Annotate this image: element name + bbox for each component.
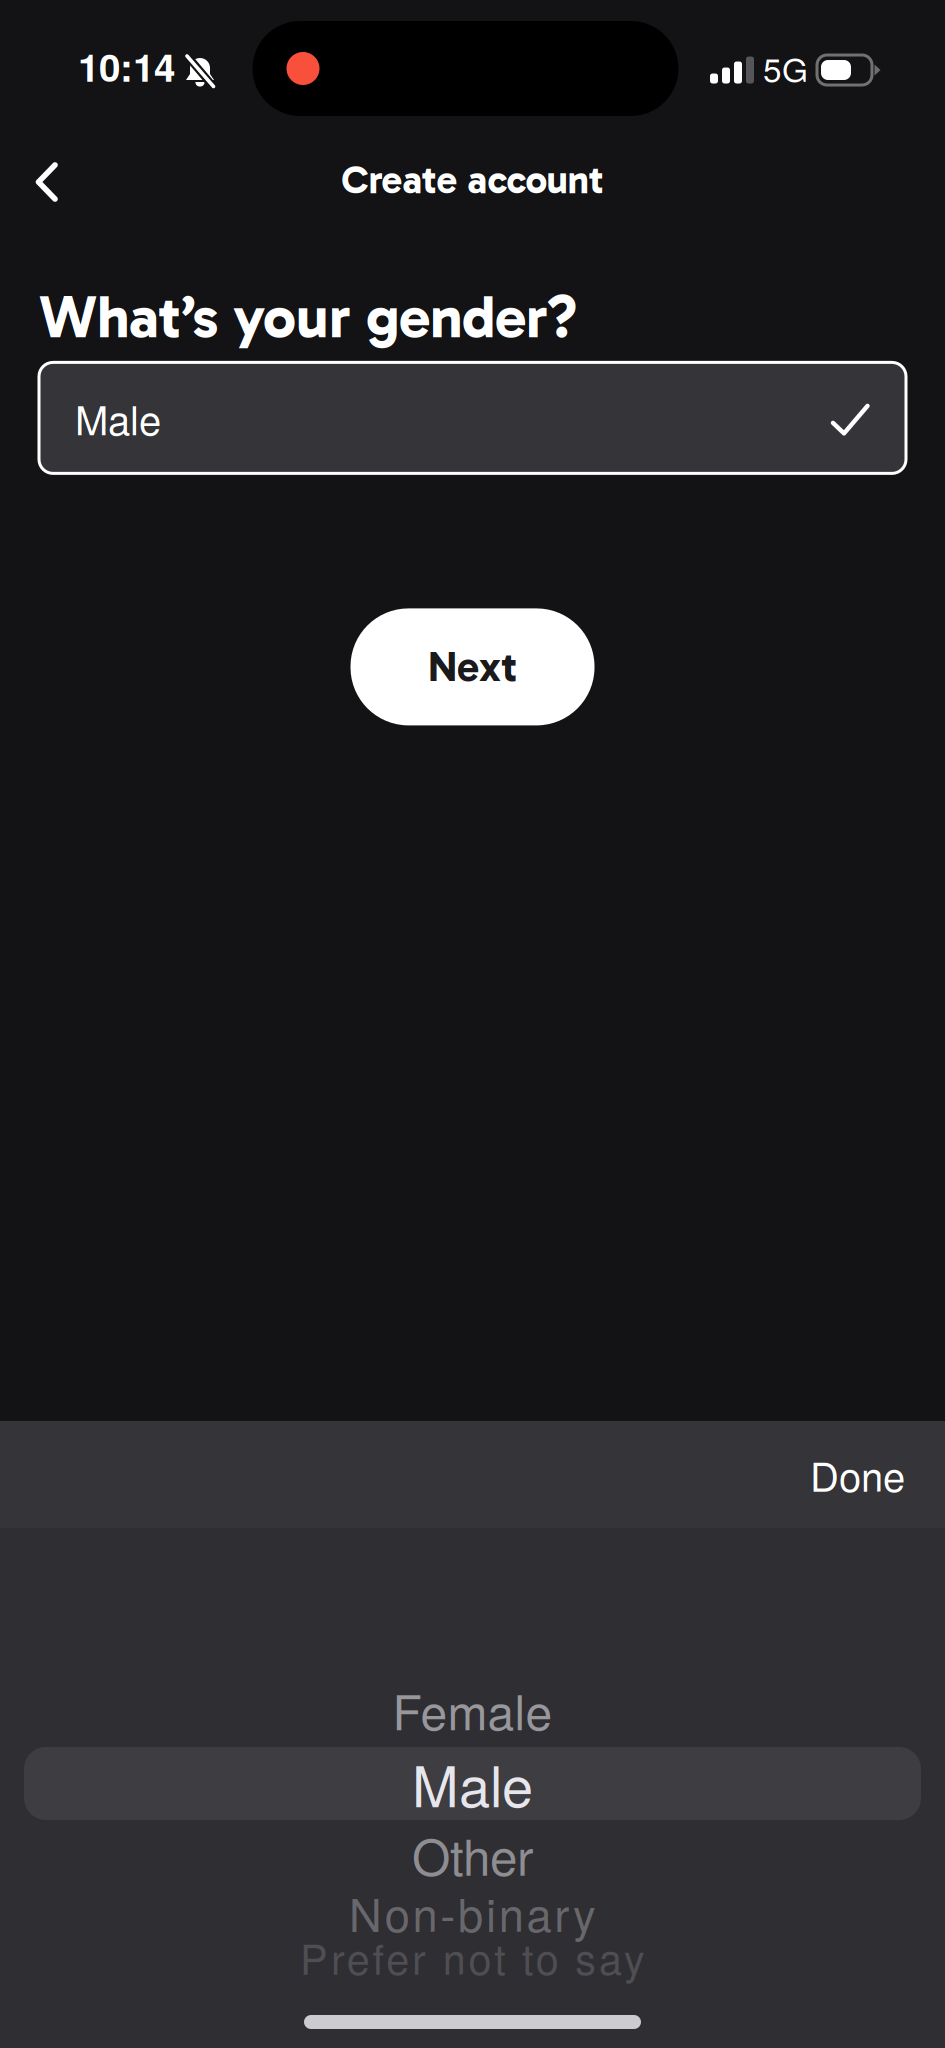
button[interactable]: Done: [770, 1420, 945, 1529]
staticText: Female: [392, 1675, 552, 1744]
staticText: Non-binary: [349, 1880, 596, 1945]
staticText: What’s your gender?: [39, 282, 578, 352]
staticText: Next: [428, 642, 517, 692]
button[interactable]: Back: [0, 138, 84, 222]
staticText: 10:14: [78, 38, 175, 94]
button[interactable]: Male: [39, 362, 906, 473]
staticText: 5G: [763, 44, 808, 92]
button[interactable]: Prefer not to say: [0, 1934, 945, 1980]
button[interactable]: Male: [0, 1748, 945, 1818]
button[interactable]: Non-binary: [0, 1891, 945, 1934]
button[interactable]: Other: [0, 1818, 945, 1891]
staticText: Prefer not to say: [300, 1927, 645, 1987]
button[interactable]: Female: [0, 1671, 945, 1748]
staticText: Other: [412, 1819, 533, 1890]
staticText: Male: [75, 389, 161, 447]
staticText: Male: [412, 1743, 533, 1823]
staticText: Create account: [341, 157, 603, 203]
button[interactable]: Next: [350, 608, 594, 725]
staticText: Done: [810, 1446, 905, 1503]
